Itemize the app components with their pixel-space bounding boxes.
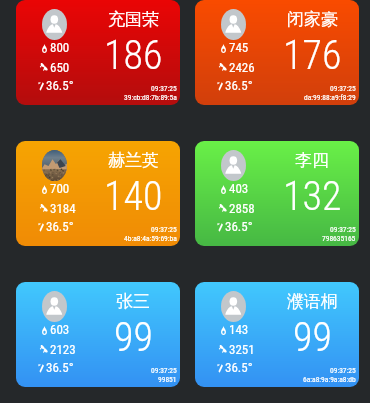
- staticText: 4b:a8:4a:59:69:ba: [124, 234, 177, 243]
- staticText: 36.5°: [225, 78, 253, 93]
- staticText: 充国荣: [108, 9, 159, 30]
- staticText: 09:37:25: [151, 84, 177, 93]
- button[interactable]: Calories: [195, 0, 359, 105]
- staticText: 99: [293, 314, 332, 361]
- staticText: 闭家豪: [287, 9, 338, 30]
- other: Calories: [42, 326, 47, 335]
- button[interactable]: Calories: [16, 141, 180, 246]
- staticText: 140: [104, 173, 163, 220]
- staticText: 143: [229, 322, 249, 337]
- other: Steps: [40, 204, 48, 212]
- staticText: 603: [50, 322, 70, 337]
- staticText: 176: [283, 32, 342, 79]
- other: Steps: [219, 204, 227, 212]
- other: Temperature: [38, 364, 44, 373]
- staticText: 99: [114, 314, 153, 361]
- staticText: 132: [283, 173, 342, 220]
- staticText: 2858: [229, 201, 255, 216]
- staticText: 798635165: [322, 234, 356, 243]
- button[interactable]: Calories: [16, 0, 180, 105]
- staticText: 2123: [50, 342, 76, 357]
- staticText: 09:37:25: [330, 84, 356, 93]
- other: Temperature: [217, 364, 223, 373]
- other: Steps: [219, 63, 227, 71]
- other: Steps: [40, 345, 48, 353]
- staticText: 09:37:25: [151, 366, 177, 375]
- staticText: 186: [104, 32, 163, 79]
- button[interactable]: Calories: [16, 282, 180, 387]
- staticText: 3251: [229, 342, 255, 357]
- staticText: 650: [50, 60, 70, 75]
- staticText: 濮语桐: [287, 291, 338, 312]
- button[interactable]: Calories: [195, 141, 359, 246]
- other: Temperature: [38, 82, 44, 91]
- other: Calories: [221, 185, 226, 194]
- staticText: 09:37:25: [330, 366, 356, 375]
- staticText: 700: [50, 181, 70, 196]
- staticText: da:99:88:a9:f8:29: [304, 93, 356, 102]
- other: Temperature: [38, 223, 44, 232]
- other: Calories: [42, 185, 47, 194]
- other: Temperature: [217, 82, 223, 91]
- staticText: 39:cb:d8:7b:89:5a: [124, 93, 177, 102]
- staticText: 36.5°: [225, 219, 253, 234]
- staticText: 2426: [229, 60, 255, 75]
- button[interactable]: Calories: [195, 282, 359, 387]
- staticText: 3184: [50, 201, 76, 216]
- staticText: 张三: [116, 291, 150, 312]
- staticText: 36.5°: [46, 360, 74, 375]
- other: Temperature: [217, 223, 223, 232]
- other: Calories: [42, 44, 47, 53]
- other: Steps: [219, 345, 227, 353]
- other: Calories: [221, 44, 226, 53]
- staticText: 李四: [295, 150, 329, 171]
- staticText: 36.5°: [225, 360, 253, 375]
- staticText: 36.5°: [46, 219, 74, 234]
- staticText: 800: [50, 40, 70, 55]
- staticText: 403: [229, 181, 249, 196]
- staticText: 09:37:25: [330, 225, 356, 234]
- staticText: 09:37:25: [151, 225, 177, 234]
- other: Steps: [40, 63, 48, 71]
- staticText: 745: [229, 40, 249, 55]
- staticText: 99851: [158, 375, 177, 384]
- other: Calories: [221, 326, 226, 335]
- staticText: 赫兰英: [108, 150, 159, 171]
- staticText: 6a:a8:9a:9a:a8:db: [303, 375, 356, 384]
- staticText: 36.5°: [46, 78, 74, 93]
